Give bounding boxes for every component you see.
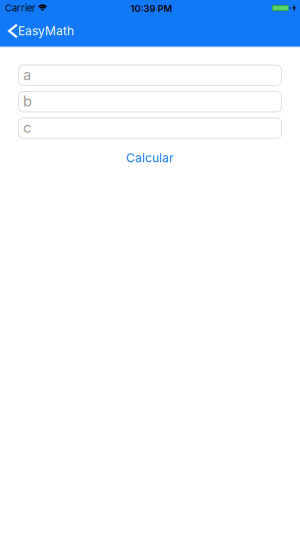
textField[interactable]: a xyxy=(23,66,282,83)
textField[interactable]: c xyxy=(23,119,282,136)
staticText: a xyxy=(23,66,31,83)
button[interactable]: Calcular xyxy=(126,151,174,165)
staticText: Carrier xyxy=(5,2,36,13)
textField[interactable]: b xyxy=(23,92,282,110)
staticText: EasyMath xyxy=(18,24,74,38)
staticText: b xyxy=(23,92,32,110)
button[interactable]: Back xyxy=(0,23,74,38)
staticText: c xyxy=(23,119,31,136)
staticText: Calcular xyxy=(126,151,174,165)
staticText: 10:39 PM xyxy=(130,3,172,14)
